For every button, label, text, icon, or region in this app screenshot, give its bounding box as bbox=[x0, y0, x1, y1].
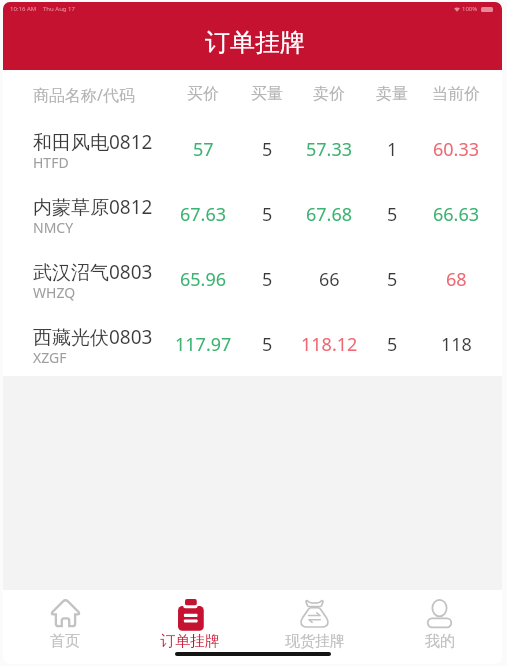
staticText: 118 bbox=[441, 332, 472, 357]
staticText: 100% bbox=[462, 5, 478, 13]
staticText: 60.33 bbox=[433, 137, 480, 162]
button[interactable]: 和田风电0812 bbox=[3, 114, 502, 179]
staticText: 卖价 bbox=[313, 84, 345, 104]
staticText: Thu Aug 17 bbox=[43, 5, 75, 13]
staticText: 当前价 bbox=[432, 84, 480, 104]
staticText: XZGF bbox=[33, 348, 67, 367]
staticText: 5 bbox=[262, 202, 273, 227]
staticText: 66 bbox=[319, 267, 340, 292]
button[interactable]: 现货挂牌 bbox=[252, 590, 377, 650]
staticText: NMCY bbox=[33, 218, 74, 237]
staticText: 5 bbox=[387, 202, 398, 227]
staticText: 买价 bbox=[187, 84, 219, 104]
button[interactable]: 内蒙草原0812 bbox=[3, 179, 502, 244]
staticText: 10:16 AM bbox=[10, 5, 37, 13]
staticText: 订单挂牌 bbox=[160, 632, 220, 650]
staticText: 5 bbox=[387, 267, 398, 292]
staticText: 首页 bbox=[50, 632, 80, 650]
staticText: 68 bbox=[446, 267, 467, 292]
staticText: 5 bbox=[262, 332, 273, 357]
staticText: 67.63 bbox=[180, 202, 227, 227]
staticText: 57.33 bbox=[306, 137, 353, 162]
staticText: 西藏光伏0803 bbox=[33, 324, 153, 350]
staticText: 武汉沼气0803 bbox=[33, 259, 153, 285]
button[interactable]: 我的 bbox=[377, 590, 502, 650]
staticText: 118.12 bbox=[301, 332, 358, 357]
staticText: 117.97 bbox=[175, 332, 232, 357]
staticText: 现货挂牌 bbox=[285, 632, 345, 650]
staticText: 5 bbox=[262, 267, 273, 292]
staticText: 1 bbox=[387, 137, 398, 162]
staticText: 买量 bbox=[251, 84, 283, 104]
staticText: WHZQ bbox=[33, 283, 76, 302]
staticText: 和田风电0812 bbox=[33, 129, 153, 155]
staticText: 5 bbox=[262, 137, 273, 162]
staticText: 57 bbox=[193, 137, 214, 162]
staticText: 内蒙草原0812 bbox=[33, 194, 153, 220]
staticText: 订单挂牌 bbox=[205, 27, 305, 58]
staticText: 我的 bbox=[425, 632, 455, 650]
staticText: 67.68 bbox=[306, 202, 353, 227]
staticText: HTFD bbox=[33, 153, 69, 172]
button[interactable]: 武汉沼气0803 bbox=[3, 244, 502, 309]
button[interactable]: 首页 bbox=[3, 590, 127, 650]
staticText: 66.63 bbox=[433, 202, 480, 227]
staticText: 商品名称/代码 bbox=[33, 84, 135, 106]
staticText: 5 bbox=[387, 332, 398, 357]
button[interactable]: 西藏光伏0803 bbox=[3, 309, 502, 374]
staticText: 卖量 bbox=[376, 84, 408, 104]
button[interactable]: 订单挂牌 bbox=[127, 590, 252, 650]
staticText: 65.96 bbox=[180, 267, 227, 292]
